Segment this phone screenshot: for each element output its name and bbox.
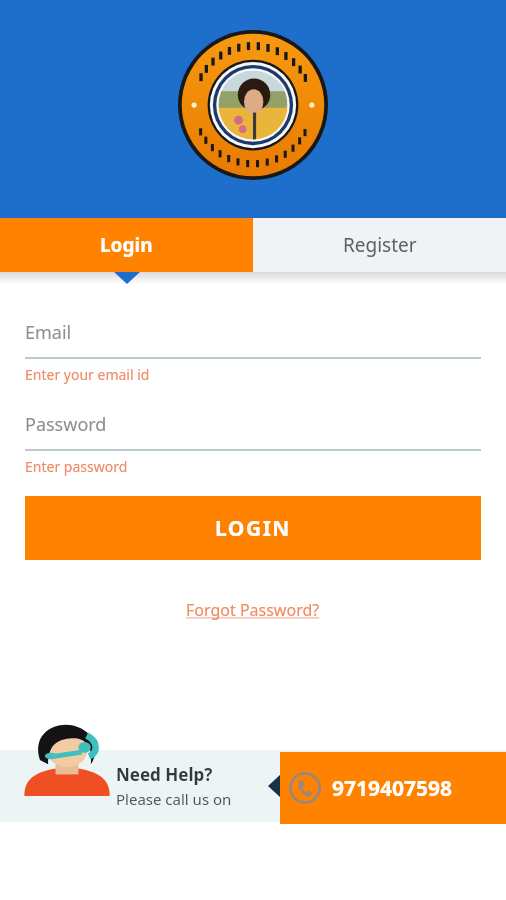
other: App logo [178,30,328,180]
staticText: Need Help? [116,763,213,786]
staticText: LOGIN [215,514,291,543]
button[interactable]: LOGIN [25,496,481,560]
staticText: Login [100,232,153,258]
button[interactable]: Forgot Password? [180,593,326,627]
staticText: Please call us on [116,789,232,809]
staticText: Forgot Password? [186,599,320,621]
other: Call 9719407598 [288,771,322,805]
staticText: Password [25,412,107,437]
staticText: Enter your email id [25,365,150,384]
button[interactable]: Login [0,218,253,272]
staticText: 9719407598 [332,774,453,803]
staticText: Email [25,320,72,345]
button[interactable]: Register [253,218,506,272]
staticText: Enter password [25,457,128,476]
staticText: Register [343,232,417,258]
button[interactable]: Call 9719407598 [280,752,506,824]
